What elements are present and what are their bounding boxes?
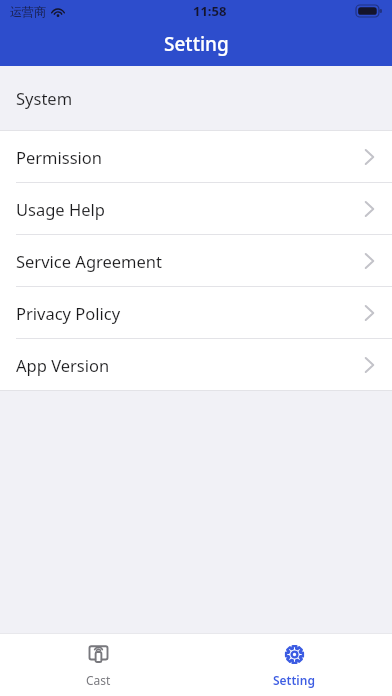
button[interactable]: Service Agreement (0, 235, 392, 286)
button[interactable]: Setting (196, 634, 392, 696)
staticText: Privacy Policy (16, 302, 121, 324)
button[interactable]: App Version (0, 339, 392, 390)
staticText: Setting (164, 31, 229, 57)
button[interactable]: Cast (0, 634, 196, 696)
staticText: Cast (86, 672, 111, 688)
staticText: Usage Help (16, 198, 105, 220)
staticText: Permission (16, 146, 103, 168)
staticText: Service Agreement (16, 250, 163, 272)
button[interactable]: Usage Help (0, 183, 392, 234)
staticText: App Version (16, 354, 110, 376)
button[interactable]: Permission (0, 131, 392, 182)
staticText: 11:58 (193, 2, 227, 20)
staticText: Setting (273, 672, 315, 688)
button[interactable]: Privacy Policy (0, 287, 392, 338)
staticText: System (16, 87, 73, 109)
staticText: 运营商 (10, 4, 46, 19)
